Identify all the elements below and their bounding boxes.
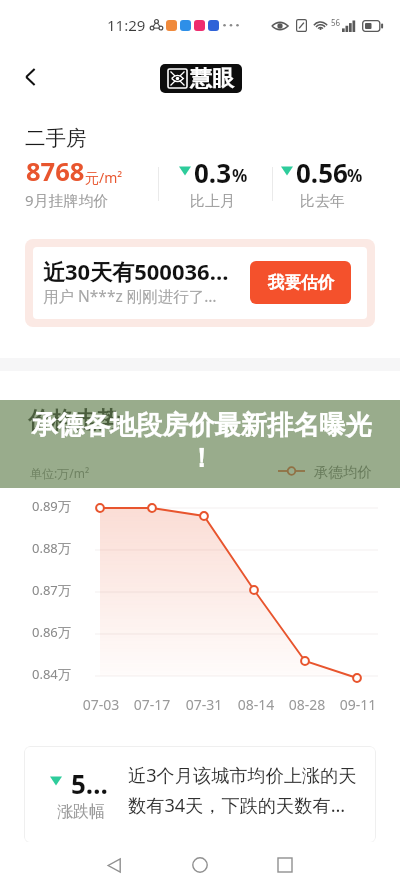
staticText: 0.88万 xyxy=(32,539,71,557)
staticText: 0.86万 xyxy=(32,623,71,641)
staticText: 0.56 xyxy=(296,155,348,190)
staticText: 单位:万/m² xyxy=(30,465,90,481)
button[interactable]: Home xyxy=(187,852,213,878)
staticText: % xyxy=(232,164,248,187)
staticText: 近30天有500036… xyxy=(43,256,229,286)
staticText: 价格走势 xyxy=(28,406,120,435)
staticText: 比去年 xyxy=(300,192,345,211)
staticText: 元/m² xyxy=(85,168,123,187)
staticText: 07-31 xyxy=(182,695,226,714)
staticText: 5… xyxy=(71,766,109,801)
button[interactable]: 慧眼 xyxy=(160,64,242,93)
staticText: 07-03 xyxy=(79,695,123,714)
staticText: 08-14 xyxy=(234,695,278,714)
staticText: 9月挂牌均价 xyxy=(25,190,109,210)
staticText: 承德均价 xyxy=(314,463,372,481)
staticText: 56 xyxy=(331,17,341,28)
staticText: 比上月 xyxy=(190,192,235,211)
staticText: 8768 xyxy=(26,154,85,189)
staticText: 08-28 xyxy=(285,695,329,714)
staticText: 二手房 xyxy=(25,125,87,151)
staticText: 0.89万 xyxy=(32,497,71,515)
staticText: 近3个月该城市均价上涨的天数有34天，下跌的天数有… xyxy=(128,763,358,817)
button[interactable]: 5… xyxy=(24,746,376,843)
staticText: % xyxy=(347,164,363,187)
staticText: 11:29 xyxy=(107,15,146,35)
staticText: 涨跌幅 xyxy=(57,802,105,822)
staticText: 慧眼 xyxy=(190,65,234,93)
button[interactable]: 我要估价 xyxy=(250,261,351,304)
staticText: 0.3 xyxy=(194,155,232,190)
staticText: 0.87万 xyxy=(32,581,71,599)
staticText: 承德各地段房价最新排名曝光 xyxy=(31,409,372,442)
staticText: 07-17 xyxy=(130,695,174,714)
staticText: 0.84万 xyxy=(32,665,71,683)
staticText: 我要估价 xyxy=(268,272,334,293)
button[interactable]: Back xyxy=(101,852,127,878)
button[interactable]: 承德各地段房价最新排名曝光 xyxy=(0,400,400,488)
staticText: 09-11 xyxy=(336,695,380,714)
button[interactable]: Recents xyxy=(272,852,298,878)
button[interactable]: Back xyxy=(12,58,50,96)
staticText: ！ xyxy=(31,442,372,475)
staticText: 用户 N***z 刚刚进行了… xyxy=(43,285,217,306)
